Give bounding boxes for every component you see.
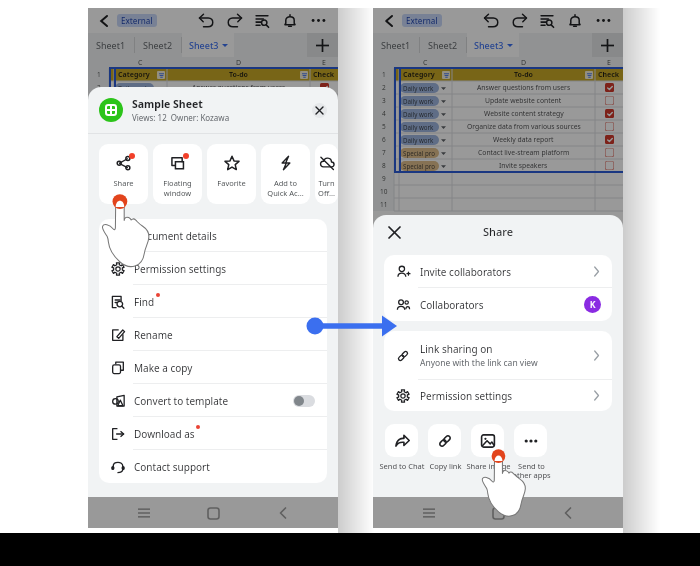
staticText: Sheet1	[381, 39, 411, 51]
staticText: Turn Off...	[318, 178, 335, 198]
staticText: Invite collaborators	[420, 265, 512, 279]
button[interactable]: Convert to template toggle	[293, 395, 315, 407]
staticText: Contact live-stream platform	[193, 148, 285, 157]
staticText: External	[406, 15, 438, 26]
button[interactable]: Add sheet	[307, 33, 338, 57]
button[interactable]: Search	[533, 8, 561, 33]
staticText: D	[521, 58, 527, 68]
button[interactable]	[471, 424, 504, 457]
staticText: External	[121, 15, 153, 26]
staticText: 7	[97, 148, 101, 157]
button[interactable]: Permission settings	[99, 252, 327, 285]
staticText: Update website content	[485, 96, 562, 105]
staticText: Send to Chat	[379, 461, 425, 471]
button[interactable]: Permission settings	[384, 380, 612, 411]
staticText: 1	[382, 70, 386, 79]
staticText: 4	[97, 109, 101, 118]
button[interactable]: Convert to template	[99, 384, 327, 417]
button[interactable]: Sheet3	[182, 33, 234, 57]
staticText: Sheet1	[96, 39, 126, 51]
staticText: 1	[97, 70, 101, 79]
button[interactable]: Link sharing on	[384, 331, 612, 380]
button[interactable]: Home	[484, 499, 512, 527]
button[interactable]: Contact support	[99, 450, 327, 483]
staticText: Weekly data report	[493, 135, 554, 144]
button[interactable]: Floating window	[153, 144, 202, 204]
button[interactable]	[385, 424, 418, 457]
staticText: Send to other apps	[512, 461, 551, 481]
button[interactable]: Search	[248, 8, 276, 33]
button[interactable]: Close	[312, 103, 327, 118]
button[interactable]: Favorite	[207, 144, 256, 204]
button[interactable]: Add sheet	[592, 33, 623, 57]
button[interactable]: More options	[589, 8, 617, 33]
button[interactable]: External	[117, 14, 157, 27]
button[interactable]: Share	[99, 144, 148, 204]
button[interactable]: Undo	[477, 8, 505, 33]
button[interactable]: Home	[199, 499, 227, 527]
staticText: Daily work	[118, 110, 149, 118]
button[interactable]: Find	[99, 285, 327, 318]
button[interactable]: Back	[94, 11, 114, 31]
button[interactable]: More options	[304, 8, 332, 33]
button[interactable]: Notifications	[561, 8, 589, 33]
button[interactable]: Redo	[220, 8, 248, 33]
button[interactable]: Undo	[192, 8, 220, 33]
staticText: Website content strategy	[199, 109, 279, 118]
button[interactable]: Sheet1	[373, 33, 419, 57]
staticText: Organize data from various sources	[467, 122, 581, 131]
staticText: Daily work	[403, 110, 434, 118]
staticText: Daily work	[118, 84, 149, 92]
staticText: Add to Quick Ac...	[267, 178, 304, 198]
button[interactable]: Sheet2	[420, 33, 466, 57]
button[interactable]: Back	[554, 499, 582, 527]
button[interactable]: Back	[269, 499, 297, 527]
staticText: 8	[382, 161, 386, 170]
staticText: Permission settings	[420, 389, 513, 403]
button[interactable]	[514, 424, 547, 457]
button[interactable]: External	[402, 14, 442, 27]
staticText: 4	[382, 109, 386, 118]
button[interactable]: Invite collaborators	[384, 255, 612, 288]
staticText: Find	[134, 295, 155, 309]
button[interactable]: Sheet2	[135, 33, 181, 57]
button[interactable]: Recents	[130, 499, 158, 527]
button[interactable]: Redo	[505, 8, 533, 33]
button[interactable]	[428, 424, 461, 457]
staticText: Floating window	[163, 178, 192, 198]
button[interactable]: Sheet1	[88, 33, 134, 57]
button[interactable]: Recents	[415, 499, 443, 527]
button[interactable]: Download as	[99, 417, 327, 450]
staticText: 7	[382, 148, 386, 157]
staticText: Special pro	[118, 162, 150, 170]
button[interactable]: Back	[379, 11, 399, 31]
staticText: E	[607, 58, 611, 68]
staticText: 2	[97, 83, 101, 92]
button[interactable]: Document details	[99, 219, 327, 252]
staticText: Sample Sheet	[132, 97, 203, 111]
staticText: Answer questions from users	[192, 83, 286, 92]
staticText: Share image	[466, 461, 511, 471]
staticText: Share	[483, 224, 513, 239]
staticText: Category	[403, 70, 435, 80]
staticText: Daily work	[403, 123, 434, 131]
button[interactable]: Notifications	[276, 8, 304, 33]
button[interactable]: Rename	[99, 318, 327, 351]
button[interactable]: Sheet3	[467, 33, 519, 57]
staticText: Special pro	[403, 149, 435, 157]
staticText: Contact support	[134, 460, 210, 474]
button[interactable]: Turn Off...	[315, 144, 338, 204]
staticText: Views: 12 Owner: Kozawa	[132, 112, 230, 123]
staticText: To-do	[514, 70, 533, 80]
staticText: 6	[382, 135, 386, 144]
staticText: Special pro	[403, 162, 435, 170]
button[interactable]: Close	[384, 222, 404, 242]
button[interactable]: Add to Quick Ac...	[261, 144, 310, 204]
button[interactable]: Make a copy	[99, 351, 327, 384]
staticText: 9	[382, 174, 386, 183]
staticText: Download as	[134, 427, 195, 441]
button[interactable]: Collaborators	[384, 288, 612, 321]
staticText: Sheet3	[189, 39, 219, 51]
